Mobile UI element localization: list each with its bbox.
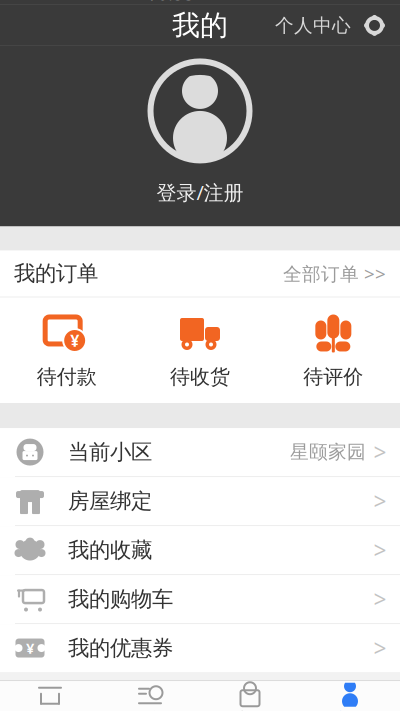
staticText: 登录/注册 [156,179,243,205]
staticText: 当前小区 [68,439,152,465]
button[interactable]: 我的购物车 [0,575,400,624]
button[interactable]: 生活 [200,678,300,711]
staticText: 我的购物车 [68,586,173,612]
staticText: > [373,486,386,516]
staticText: > [373,584,386,614]
staticText: ¥ [26,638,34,658]
staticText: 待评价 [303,364,363,389]
staticText: 待收货 [170,364,230,389]
button[interactable]: 待收货 [133,309,267,393]
button[interactable]: 个人中心 [270,7,356,44]
staticText: 全部订单 >> [283,261,386,286]
button[interactable]: 首页 [0,678,100,711]
staticText: > [373,437,386,467]
staticText: > [373,633,386,663]
button[interactable]: 当前小区 [0,428,400,477]
button[interactable]: 我的 [300,678,400,711]
button[interactable]: ¥ [0,624,400,672]
staticText: 待付款 [37,364,97,389]
staticText: 16:53 [146,0,195,5]
staticText: ¥ [70,330,79,351]
button[interactable]: ¥ [0,309,133,393]
button[interactable]: 全部订单 >> [273,255,386,292]
button[interactable]: 房屋绑定 [0,477,400,526]
button[interactable]: 登录/注册 [144,174,255,210]
staticText: 我的 [172,8,228,43]
button[interactable]: 租赁 [100,678,200,711]
staticText: 我的订单 [14,260,98,287]
staticText: 我的优惠券 [68,635,173,661]
button[interactable]: 设置 [356,9,393,42]
staticText: 我的收藏 [68,537,152,563]
button[interactable]: 我的收藏 [0,526,400,575]
staticText: 个人中心 [275,14,351,37]
staticText: 星颐家园 [290,441,366,463]
button[interactable]: 待评价 [267,309,400,393]
staticText: 房屋绑定 [68,488,152,514]
staticText: > [373,535,386,565]
